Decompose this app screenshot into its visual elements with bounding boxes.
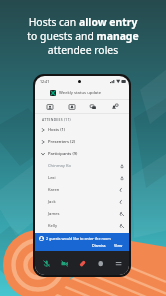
staticText: Kelly <box>48 223 58 229</box>
button[interactable]: People <box>65 100 78 113</box>
button[interactable]: End call <box>75 256 89 270</box>
staticText: Presenters (2) <box>48 139 76 145</box>
button[interactable]: Dismiss <box>90 242 108 249</box>
button[interactable]: Chat <box>86 100 99 113</box>
button[interactable]: Participants (9) <box>35 148 129 160</box>
button[interactable]: More options <box>111 256 125 270</box>
staticText: Participants (9) <box>48 151 78 157</box>
button[interactable]: Lexi <box>35 172 129 184</box>
staticText: Weekly status update <box>59 90 102 96</box>
staticText: 2 guests would like to enter the room <box>46 236 111 241</box>
button[interactable]: Microphone <box>39 256 53 270</box>
button[interactable]: Add people <box>108 100 121 113</box>
button[interactable]: Camera <box>57 256 71 270</box>
button[interactable]: Jack <box>35 196 129 208</box>
button[interactable]: Meeting details <box>43 100 56 113</box>
staticText: ATTENDEES (11) <box>42 117 71 122</box>
staticText: Chinmay Ko <box>48 163 71 169</box>
button[interactable]: View <box>112 242 125 249</box>
button[interactable]: Presenters (2) <box>35 136 129 148</box>
staticText: Hosts can allow entry to guests and mana… <box>27 15 139 57</box>
staticText: Dismiss <box>92 243 106 248</box>
button[interactable]: Kelly <box>35 220 129 232</box>
staticText: Hosts (1) <box>48 127 66 133</box>
button[interactable]: Karen <box>35 184 129 196</box>
button[interactable]: Chinmay Ko <box>35 160 129 172</box>
staticText: Karen <box>48 187 60 193</box>
staticText: Lexi <box>48 175 56 181</box>
button[interactable]: Raise hand <box>93 256 107 270</box>
button[interactable]: Hosts (1) <box>35 124 129 136</box>
staticText: Jack <box>48 199 56 205</box>
staticText: James <box>48 211 60 217</box>
staticText: View <box>114 243 123 248</box>
staticText: 12:41 <box>40 79 50 84</box>
button[interactable]: James <box>35 208 129 220</box>
